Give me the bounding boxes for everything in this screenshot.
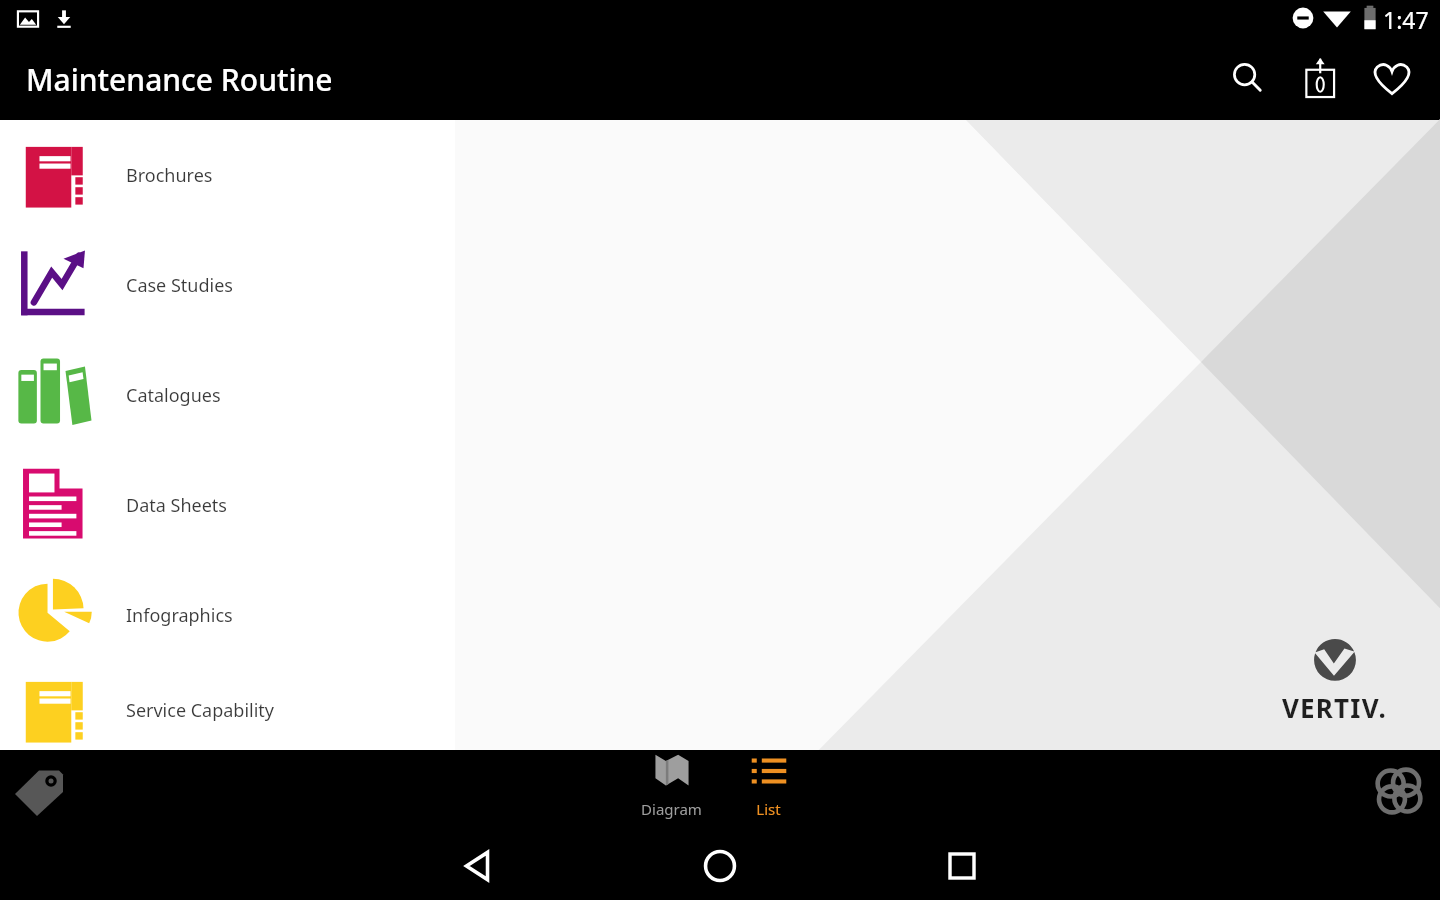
staticText: Infographics [126,603,233,628]
button[interactable]: Catalogues [0,340,1440,450]
button[interactable]: Home [692,838,748,894]
staticText: Brochures [126,163,213,188]
button[interactable]: Brochures [0,120,1440,230]
staticText: Service Capability [126,698,275,723]
staticText: Catalogues [126,383,221,408]
button[interactable]: Case Studies [0,230,1440,340]
button[interactable]: Data Sheets [0,450,1440,560]
button[interactable]: Cart [1284,43,1356,115]
staticText: Data Sheets [126,493,227,518]
staticText: 1:47 [1383,4,1429,35]
button[interactable]: Infographics [0,560,1440,670]
button[interactable]: Search [1212,43,1284,115]
button[interactable]: Back [450,838,506,894]
button[interactable]: List [720,750,817,832]
button[interactable]: Favorites [1356,43,1428,115]
button[interactable]: Recents [934,838,990,894]
staticText: Diagram [641,799,702,819]
staticText: Case Studies [126,273,233,298]
staticText: Maintenance Routine [26,59,333,100]
button[interactable]: Tags [3,755,75,827]
button[interactable]: Brand [1363,755,1435,827]
button[interactable]: Service Capability [0,670,1440,750]
staticText: VERTIV. [1282,690,1387,725]
button[interactable]: Diagram [623,750,720,832]
staticText: List [756,799,781,819]
